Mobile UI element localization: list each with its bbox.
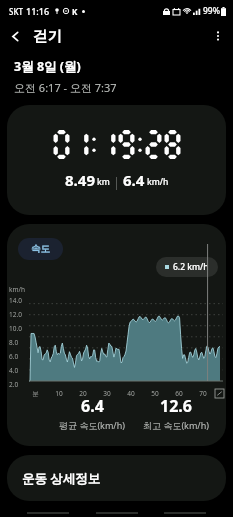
staticText: 30: [95, 389, 119, 398]
staticText: 운동 상세정보: [22, 470, 101, 487]
staticText: 70: [191, 389, 215, 398]
staticText: 11:16: [26, 5, 50, 17]
staticText: 14.0: [9, 296, 22, 305]
button[interactable]: 속도: [18, 238, 63, 260]
button[interactable]: 8.49: [7, 105, 226, 215]
staticText: 2.0: [9, 380, 19, 389]
button[interactable]: Back: [0, 21, 30, 51]
staticText: km: [97, 176, 110, 188]
staticText: 10.0: [9, 324, 22, 333]
staticText: km/h: [147, 176, 169, 188]
staticText: 6.2 km/h: [173, 261, 209, 273]
staticText: 최고 속도(km/h): [143, 419, 209, 431]
staticText: 6.4: [123, 170, 145, 190]
staticText: 평균 속도(km/h): [59, 419, 125, 431]
button[interactable]: More options: [203, 21, 233, 51]
staticText: 60: [167, 389, 191, 398]
staticText: 40: [119, 389, 143, 398]
staticText: 4.0: [9, 366, 19, 375]
staticText: SKT: [9, 6, 23, 17]
staticText: km/h: [9, 285, 25, 294]
staticText: 12.6: [160, 395, 192, 417]
staticText: 걷기: [33, 27, 62, 45]
staticText: 10: [47, 389, 71, 398]
staticText: 8.0: [9, 338, 19, 347]
staticText: 50: [143, 389, 167, 398]
staticText: 8.49: [65, 170, 95, 190]
staticText: 3월 8일 (월): [14, 58, 81, 75]
staticText: 6.4: [81, 395, 104, 417]
staticText: 99%: [203, 5, 220, 17]
staticText: 오전 6:17 - 오전 7:37: [14, 80, 117, 95]
staticText: 속도: [31, 243, 50, 255]
button[interactable]: Expand chart: [215, 389, 224, 398]
button[interactable]: 운동 상세정보: [7, 455, 226, 501]
staticText: 20: [71, 389, 95, 398]
staticText: 분: [24, 390, 47, 398]
staticText: 6.0: [9, 352, 19, 361]
staticText: K: [72, 6, 78, 17]
staticText: 12.0: [9, 310, 22, 319]
